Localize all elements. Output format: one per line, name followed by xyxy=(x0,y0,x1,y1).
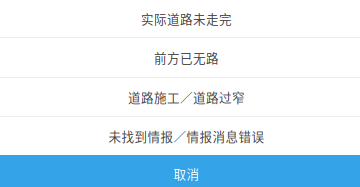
staticText: 实际道路未走完 xyxy=(141,9,232,28)
button[interactable]: 道路施工／道路过窄 xyxy=(0,78,360,116)
button[interactable]: 取消 xyxy=(0,155,360,187)
button[interactable]: 实际道路未走完 xyxy=(0,0,360,37)
staticText: 道路施工／道路过窄 xyxy=(128,88,245,106)
button[interactable]: 前方已无路 xyxy=(0,38,360,77)
button[interactable]: 未找到情报／情报消息错误 xyxy=(0,117,360,155)
staticText: 未找到情报／情报消息错误 xyxy=(108,127,264,145)
staticText: 取消 xyxy=(173,164,199,183)
staticText: 前方已无路 xyxy=(154,48,219,67)
